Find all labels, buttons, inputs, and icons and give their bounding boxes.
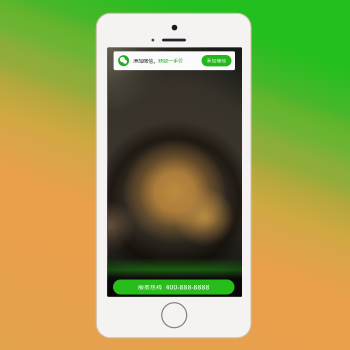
button[interactable]: 添加微信， — [114, 51, 235, 70]
staticText: 400-888-8888 — [165, 283, 209, 291]
button[interactable]: 服务热线 — [113, 279, 234, 294]
staticText: 获取一手价 — [158, 57, 183, 64]
staticText: 服务热线 — [138, 283, 162, 291]
staticText: 添加微信 — [206, 57, 226, 64]
staticText: 添加微信， — [133, 57, 158, 64]
